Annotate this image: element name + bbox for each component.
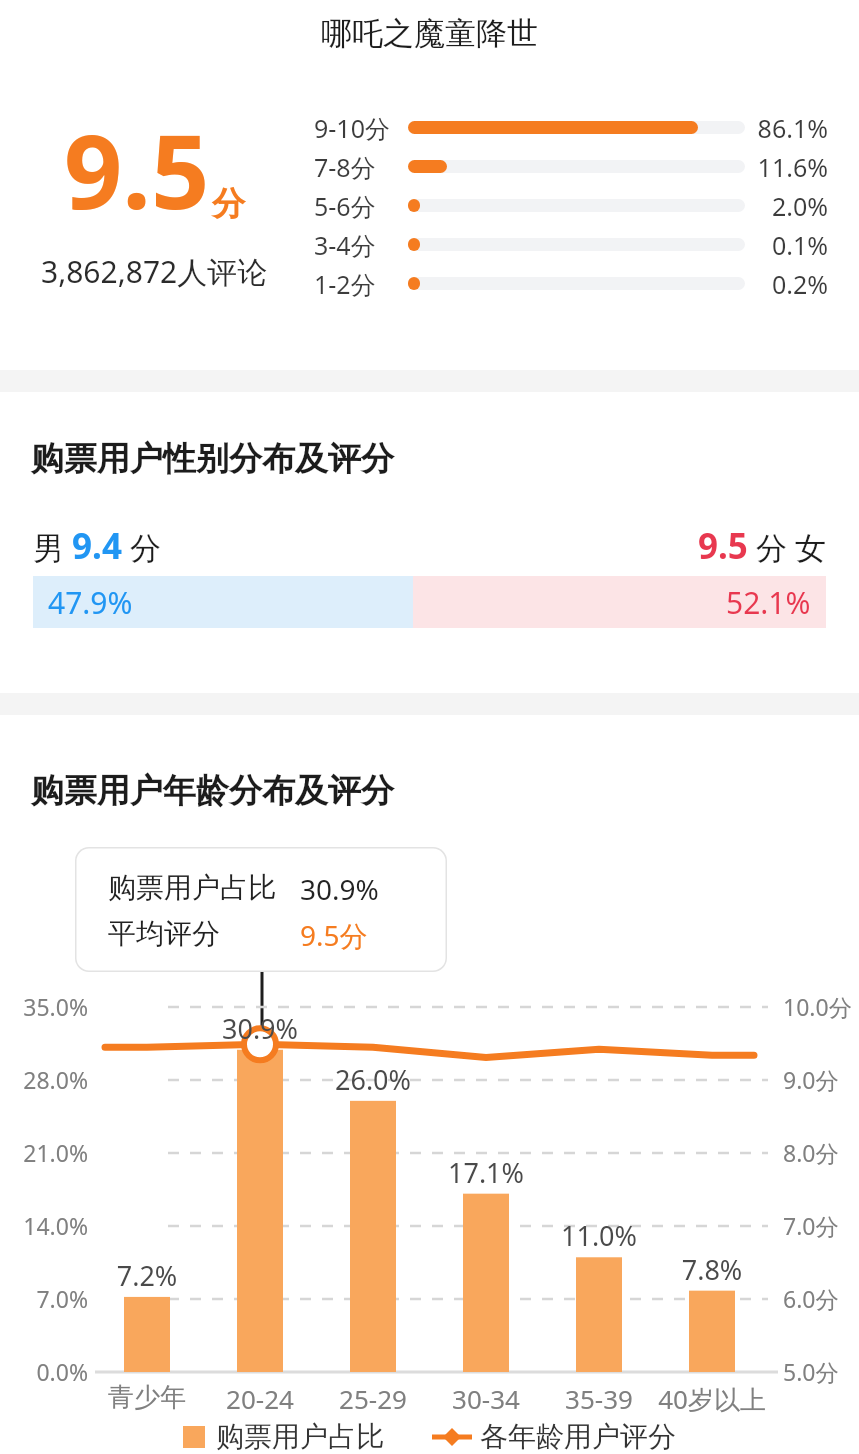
staticText: 9-10分 <box>314 111 402 145</box>
staticText: 各年龄用户评分 <box>480 1419 676 1454</box>
other: 各年龄用户评分 <box>432 1426 472 1448</box>
staticText: 25-29 <box>311 1381 435 1416</box>
staticText: 40岁以上 <box>650 1381 774 1417</box>
staticText: 分 <box>212 183 245 225</box>
staticText: 购票用户性别分布及评分 <box>31 438 394 480</box>
button[interactable]: 各年龄用户评分 <box>428 1415 680 1454</box>
staticText: 9.5 分 女 <box>698 522 826 570</box>
staticText: 14.0% <box>0 1210 88 1241</box>
staticText: 10.0分 <box>783 991 852 1022</box>
staticText: 购票用户占比 <box>216 1419 384 1454</box>
staticText: 9.5 <box>64 100 210 239</box>
staticText: 86.1% <box>745 111 828 145</box>
staticText: 20-24 <box>198 1381 322 1416</box>
staticText: 17.1% <box>426 1154 546 1191</box>
staticText: 9.5分 <box>300 916 368 954</box>
staticText: 30-34 <box>424 1381 548 1416</box>
staticText: 28.0% <box>0 1064 88 1095</box>
staticText: 26.0% <box>313 1061 433 1098</box>
staticText: 30.9% <box>200 1010 320 1047</box>
staticText: 11.6% <box>745 150 828 184</box>
staticText: 哪吒之魔童降世 <box>321 14 538 53</box>
staticText: 3,862,872人评论 <box>41 251 268 292</box>
staticText: 7.2% <box>87 1257 207 1294</box>
staticText: 7.0分 <box>783 1210 839 1241</box>
staticText: 购票用户占比 <box>108 870 276 905</box>
staticText: 47.9% <box>48 582 133 623</box>
staticText: 平均评分 <box>108 916 220 951</box>
staticText: 3-4分 <box>314 228 402 262</box>
staticText: 2.0% <box>745 189 828 223</box>
button[interactable]: 47.9% <box>33 576 413 628</box>
staticText: 1-2分 <box>314 267 402 301</box>
staticText: 21.0% <box>0 1137 88 1168</box>
staticText: 30.9% <box>300 870 379 908</box>
button[interactable]: 购票用户占比 <box>75 847 447 972</box>
staticText: 7.0% <box>0 1283 88 1314</box>
button[interactable]: 52.1% <box>413 576 826 628</box>
staticText: 青少年 <box>85 1381 209 1414</box>
staticText: 男 9.4 分 <box>33 522 161 570</box>
staticText: 8.0分 <box>783 1137 839 1168</box>
button[interactable]: 购票用户占比 <box>179 1415 388 1454</box>
staticText: 0.1% <box>745 228 828 262</box>
staticText: 0.2% <box>745 267 828 301</box>
staticText: 7-8分 <box>314 150 402 184</box>
staticText: 5.0分 <box>783 1356 839 1387</box>
staticText: 11.0% <box>539 1217 659 1254</box>
staticText: 6.0分 <box>783 1283 839 1314</box>
staticText: 0.0% <box>0 1356 88 1387</box>
staticText: 购票用户年龄分布及评分 <box>31 770 394 812</box>
staticText: 9.0分 <box>783 1064 839 1095</box>
staticText: 35-39 <box>537 1381 661 1416</box>
staticText: 7.8% <box>652 1251 772 1288</box>
staticText: 5-6分 <box>314 189 402 223</box>
staticText: 35.0% <box>0 991 88 1022</box>
staticText: 52.1% <box>726 582 811 623</box>
